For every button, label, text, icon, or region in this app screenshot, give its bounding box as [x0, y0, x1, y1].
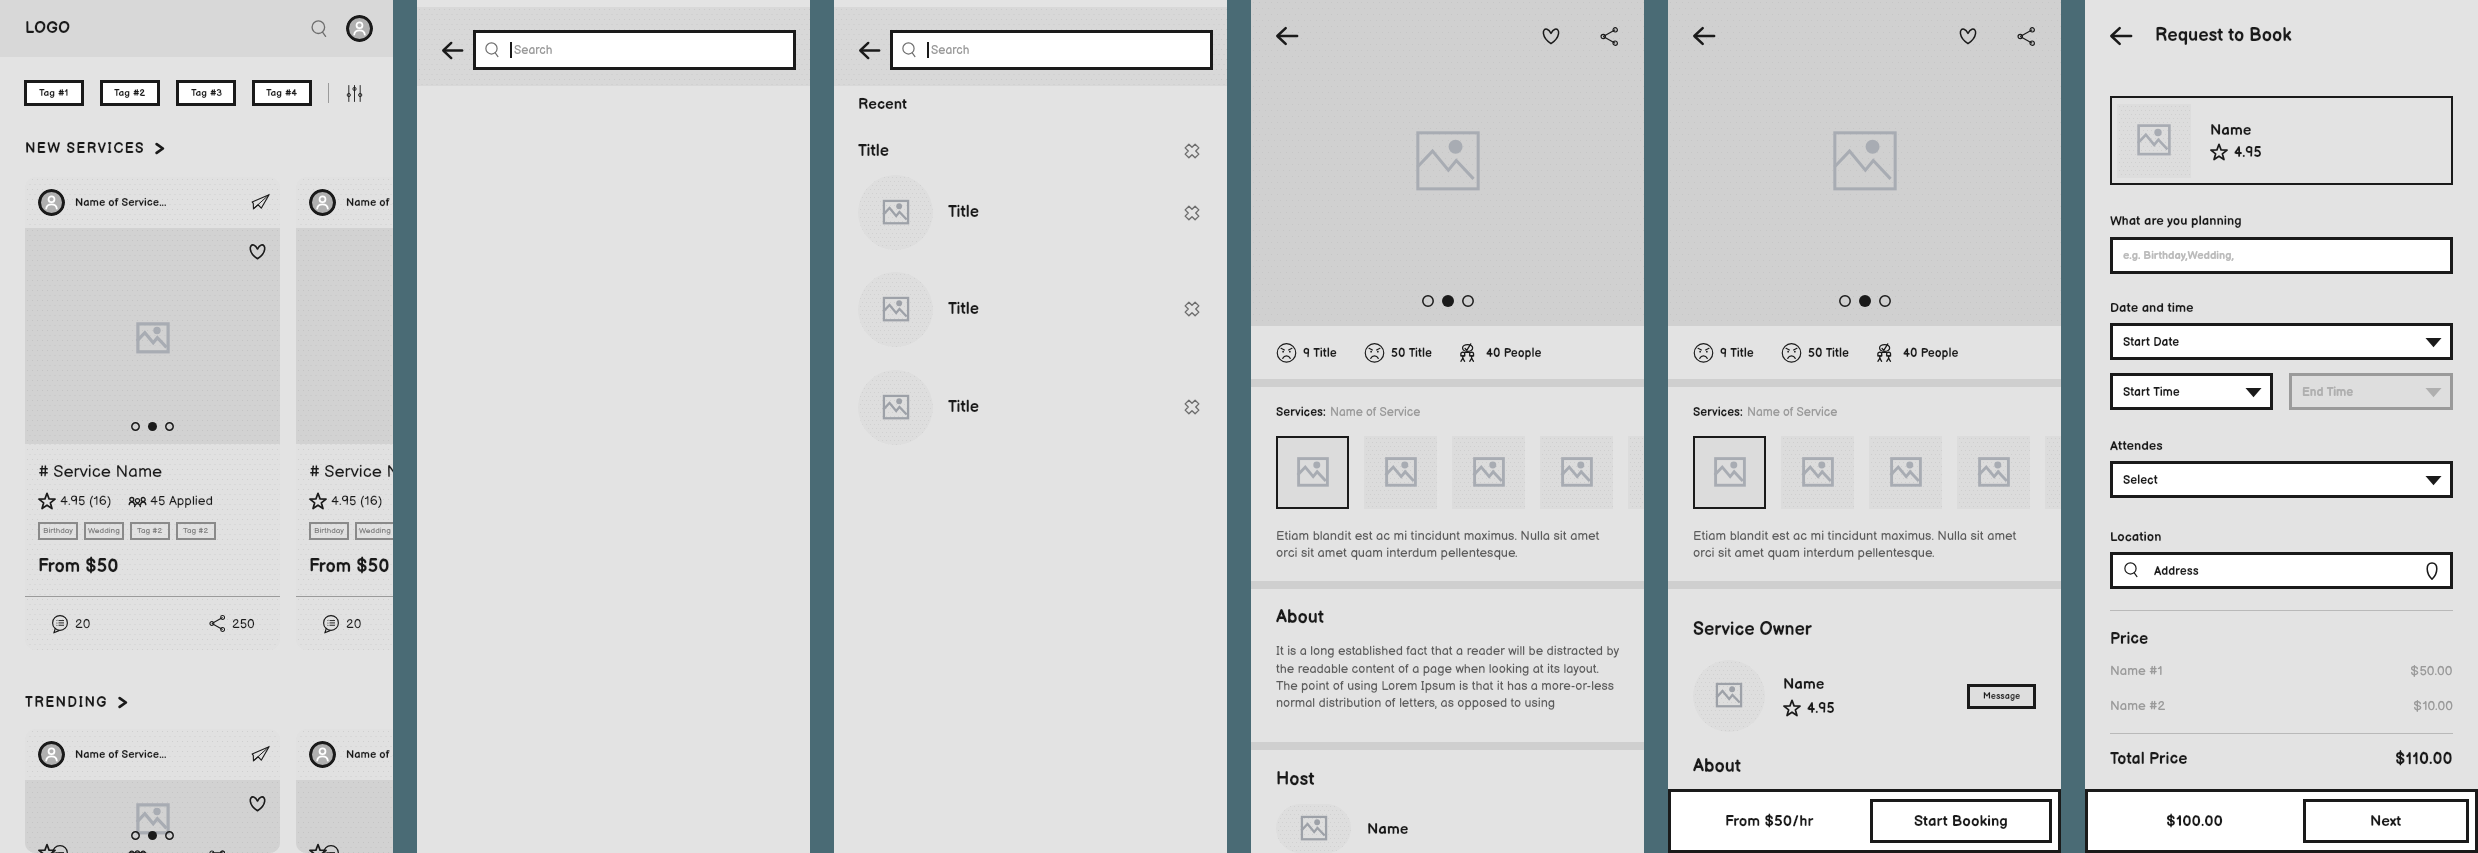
staticText: 50 Title — [1808, 346, 1849, 360]
button[interactable]: From $50/hr — [1668, 789, 1870, 853]
staticText: Name — [2210, 121, 2252, 139]
button[interactable]: End Time — [2302, 373, 2442, 410]
button[interactable] — [1364, 436, 1437, 509]
staticText: 4.95 — [1807, 700, 1835, 717]
staticText: From $50/hr — [1725, 812, 1814, 830]
button[interactable] — [1276, 436, 1349, 509]
button[interactable]: Send — [250, 744, 271, 765]
button[interactable] — [1628, 436, 1644, 509]
staticText: Name of Service... — [346, 748, 393, 761]
staticText: 20 — [346, 616, 362, 632]
button[interactable]: Remove — [1181, 140, 1203, 162]
button[interactable]: Filters — [342, 81, 366, 105]
staticText: Name — [1367, 820, 1409, 838]
button[interactable]: Favourite — [1955, 23, 1981, 49]
button[interactable]: Tag #2 — [100, 80, 160, 106]
staticText: 4.95 (16) — [60, 493, 112, 509]
button[interactable]: Favourite — [248, 794, 267, 813]
button[interactable]: Share — [1596, 23, 1622, 49]
button[interactable]: Message — [1967, 684, 2036, 709]
staticText: What are you planning — [2110, 213, 2242, 229]
button[interactable]: 20 — [51, 615, 91, 633]
button[interactable]: Start Date — [2123, 323, 2442, 360]
staticText: # Service Name — [309, 462, 393, 482]
button[interactable]: Tag #4 — [252, 80, 312, 106]
staticText: 45 Applied — [150, 493, 214, 509]
button[interactable]: $100.00 — [2085, 789, 2303, 853]
button[interactable]: Favourite — [248, 242, 267, 261]
staticText: 40 People — [1486, 346, 1542, 360]
staticText: Date and time — [2110, 300, 2194, 316]
staticText: From $50 — [38, 556, 119, 578]
staticText: 40 People — [1903, 346, 1959, 360]
staticText: About — [1276, 607, 1324, 629]
button[interactable]: Send — [250, 192, 271, 213]
button[interactable]: Remove — [1181, 298, 1203, 320]
staticText: Service Owner — [1693, 619, 1813, 641]
button[interactable]: Name of Service... — [25, 729, 280, 853]
button[interactable]: 250 — [209, 615, 255, 632]
button[interactable]: Back — [1693, 22, 1721, 50]
staticText: Title — [948, 398, 980, 417]
staticText: Start Booking — [1914, 812, 2008, 830]
staticText: From $50 — [309, 556, 390, 578]
button[interactable] — [1869, 436, 1942, 509]
staticText: Name #1 — [2110, 663, 2163, 679]
staticText: TRENDING — [25, 694, 108, 711]
button[interactable]: Select — [2123, 461, 2442, 498]
button[interactable]: Name of Service... — [296, 729, 393, 853]
staticText: 4.95 (16) — [331, 493, 383, 509]
button[interactable]: Address — [2123, 552, 2441, 589]
button[interactable]: 20 — [322, 615, 362, 633]
button[interactable]: Share — [2013, 23, 2039, 49]
button[interactable]: Search — [484, 30, 785, 70]
staticText: Etiam blandit est ac mi tincidunt maximu… — [1693, 528, 2036, 561]
staticText: Tag #2 — [183, 526, 209, 536]
button[interactable]: Remove — [1181, 202, 1203, 224]
button[interactable]: Back — [859, 38, 883, 62]
button[interactable]: Search — [304, 14, 334, 44]
button[interactable]: Next — [2303, 799, 2469, 843]
button[interactable] — [1693, 436, 1766, 509]
button[interactable]: Name of Service... — [25, 177, 280, 650]
staticText: Name #2 — [2110, 698, 2166, 714]
button[interactable]: Start Booking — [1870, 799, 2052, 843]
button[interactable]: Title — [858, 260, 1203, 358]
staticText: Start Time — [2123, 385, 2180, 399]
button[interactable]: Tag #1 — [24, 80, 84, 106]
button[interactable] — [2045, 436, 2061, 509]
button[interactable]: TRENDING — [25, 694, 368, 711]
staticText: Location — [2110, 529, 2162, 545]
button[interactable]: Back — [2110, 22, 2138, 50]
button[interactable]: Title — [858, 358, 1203, 456]
staticText: $110.00 — [2395, 750, 2453, 769]
button[interactable] — [1452, 436, 1525, 509]
button[interactable]: Remove — [1181, 396, 1203, 418]
button[interactable] — [1540, 436, 1613, 509]
staticText: Name of Service — [1747, 405, 1838, 419]
staticText: 9 Title — [1303, 346, 1337, 360]
button[interactable]: Name — [2117, 103, 2446, 178]
staticText: Wedding — [359, 526, 391, 536]
button[interactable] — [1781, 436, 1854, 509]
staticText: Services: — [1693, 405, 1747, 419]
button[interactable]: Back — [442, 38, 466, 62]
button[interactable]: Profile — [346, 15, 373, 42]
staticText: Recent — [858, 95, 908, 113]
staticText: Name of Service... — [75, 748, 167, 761]
button[interactable]: e.g. Birthday,Wedding, — [2123, 237, 2440, 274]
button[interactable]: Search — [901, 30, 1202, 70]
button[interactable]: Title — [858, 137, 1203, 165]
button[interactable]: Start Time — [2123, 373, 2262, 410]
staticText: Tag #2 — [114, 87, 146, 99]
button[interactable]: Tag #3 — [176, 80, 236, 106]
button[interactable] — [1957, 436, 2030, 509]
button[interactable]: NEW SERVICES — [25, 140, 368, 157]
button[interactable]: Favourite — [1538, 23, 1564, 49]
staticText: Attendes — [2110, 438, 2163, 454]
staticText: Message — [1983, 691, 2021, 702]
button[interactable]: Back — [1276, 22, 1304, 50]
button[interactable]: Title — [858, 165, 1203, 260]
staticText: $100.00 — [2166, 812, 2223, 830]
button[interactable]: Name of Service... — [296, 177, 393, 650]
